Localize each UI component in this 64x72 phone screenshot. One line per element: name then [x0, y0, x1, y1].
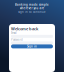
button[interactable]: Sign in [11, 44, 53, 48]
staticText: Welcome back [11, 26, 38, 31]
staticText: wherever you are [19, 6, 44, 10]
staticText: Password [11, 38, 23, 41]
staticText: Banking made simple [15, 3, 49, 6]
staticText: Email [11, 31, 17, 35]
staticText: Sign in [27, 45, 37, 48]
staticText: Sign in to continue [18, 10, 46, 14]
